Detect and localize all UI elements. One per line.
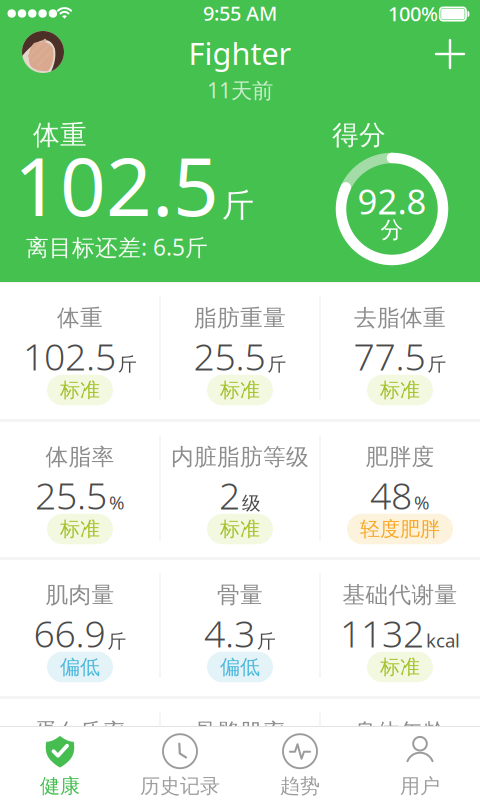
staticText: 45.5 <box>195 747 267 797</box>
staticText: 内脏脂肪等级 <box>171 443 309 471</box>
staticText: 蛋白质率 <box>34 718 126 746</box>
button[interactable]: 身体年龄 <box>320 699 480 800</box>
button[interactable]: 用户 <box>360 731 480 800</box>
staticText: 斤 <box>427 353 446 376</box>
staticText: 100% <box>388 0 438 27</box>
staticText: 偏低 <box>220 655 260 679</box>
staticText: 92.8 <box>357 178 426 224</box>
staticText: 分 <box>380 216 403 244</box>
staticText: 11天前 <box>207 76 273 104</box>
button[interactable]: 蛋白质率 <box>0 699 160 800</box>
staticText: 66.9 <box>33 608 105 658</box>
staticText: 体脂率 <box>45 443 114 471</box>
staticText: 轻度肥胖 <box>360 517 440 541</box>
staticText: 斤 <box>257 630 276 653</box>
staticText: 4.3 <box>204 608 255 658</box>
button[interactable]: 个人资料 <box>22 31 64 73</box>
staticText: 2 <box>219 470 240 520</box>
staticText: 历史记录 <box>140 774 220 798</box>
staticText: 1132 <box>340 608 424 658</box>
staticText: 级 <box>242 492 261 515</box>
button[interactable]: 体脂率 <box>0 422 160 558</box>
button[interactable]: 历史记录 <box>120 731 240 800</box>
staticText: % <box>109 490 125 515</box>
staticText: 24 <box>368 747 410 797</box>
staticText: 得分 <box>332 119 386 151</box>
staticText: 102.5 <box>23 331 116 381</box>
staticText: % <box>269 767 285 792</box>
staticText: 标准 <box>220 378 260 402</box>
staticText: 斤 <box>118 353 137 376</box>
staticText: 去脂体重 <box>354 304 446 332</box>
staticText: 斤 <box>267 353 286 376</box>
button[interactable]: 体重 <box>0 283 160 419</box>
button[interactable]: 脂肪重量 <box>160 283 320 419</box>
staticText: 肥胖度 <box>365 443 434 471</box>
staticText: 斤 <box>222 186 254 225</box>
staticText: 体重 <box>57 304 103 332</box>
button[interactable]: 去脂体重 <box>320 283 480 419</box>
staticText: 48 <box>370 470 412 520</box>
staticText: 标准 <box>380 655 420 679</box>
staticText: 脂肪重量 <box>194 304 286 332</box>
staticText: 偏低 <box>60 655 100 679</box>
staticText: 标准 <box>220 517 260 541</box>
staticText: 体重 <box>33 119 87 151</box>
staticText: 标准 <box>380 378 420 402</box>
staticText: 16.2 <box>35 747 107 797</box>
staticText: 岁 <box>412 769 431 792</box>
staticText: 9:55 AM <box>203 0 277 26</box>
button[interactable]: 肥胖度 <box>320 422 480 558</box>
staticText: 骨量 <box>217 581 263 609</box>
staticText: kcal <box>426 628 460 653</box>
staticText: 77.5 <box>353 331 425 381</box>
button[interactable]: 骨骼肌率 <box>160 699 320 800</box>
button[interactable]: 趋势 <box>240 731 360 800</box>
staticText: 25.5 <box>193 331 265 381</box>
staticText: 斤 <box>107 630 126 653</box>
button[interactable]: 健康 <box>0 731 120 800</box>
staticText: 标准 <box>60 794 100 800</box>
staticText: 健康 <box>40 774 80 798</box>
staticText: 102.5 <box>14 132 219 238</box>
button[interactable]: 骨量 <box>160 560 320 696</box>
staticText: 标准 <box>380 794 420 800</box>
staticText: 趋势 <box>280 774 320 798</box>
staticText: 基础代谢量 <box>342 581 457 609</box>
button[interactable]: 基础代谢量 <box>320 560 480 696</box>
staticText: 用户 <box>400 774 440 798</box>
staticText: Fighter <box>188 33 291 73</box>
staticText: 标准 <box>60 378 100 402</box>
staticText: 离目标还差: 6.5斤 <box>26 232 208 262</box>
button[interactable]: 内脏脂肪等级 <box>160 422 320 558</box>
staticText: 骨骼肌率 <box>194 718 286 746</box>
staticText: 肌肉量 <box>45 581 114 609</box>
staticText: 25.5 <box>35 470 107 520</box>
staticText: % <box>414 490 430 515</box>
staticText: 标准 <box>60 517 100 541</box>
staticText: 身体年龄 <box>354 718 446 746</box>
button[interactable]: 添加 <box>435 39 465 69</box>
button[interactable]: 肌肉量 <box>0 560 160 696</box>
